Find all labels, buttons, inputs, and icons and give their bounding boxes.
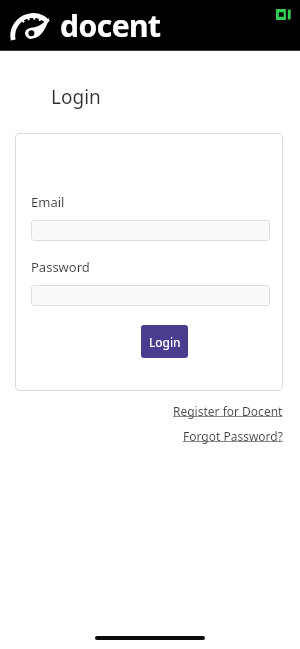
- other: Docent logo: [10, 7, 56, 43]
- staticText: Email: [31, 193, 65, 211]
- button[interactable]: Register for Docent: [173, 403, 283, 419]
- staticText: Register for Docent: [173, 403, 283, 419]
- button[interactable]: Forgot Password?: [183, 428, 283, 444]
- staticText: docent: [60, 5, 161, 46]
- button[interactable]: [31, 220, 270, 241]
- staticText: Password: [31, 258, 90, 276]
- button[interactable]: Login: [141, 325, 188, 358]
- button[interactable]: [31, 285, 270, 306]
- staticText: Login: [149, 334, 181, 350]
- staticText: Forgot Password?: [183, 428, 283, 444]
- staticText: Login: [51, 84, 101, 110]
